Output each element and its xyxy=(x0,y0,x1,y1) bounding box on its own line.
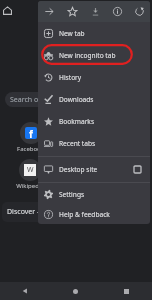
button[interactable]: Bookmark this page xyxy=(61,1,84,22)
button[interactable]: Settings xyxy=(38,183,150,205)
staticText: Discover - xyxy=(7,207,42,217)
button[interactable]: Desktop site xyxy=(38,158,150,180)
button[interactable]: Search or type web addr xyxy=(5,92,65,107)
staticText: Wikipedia xyxy=(16,182,44,189)
button[interactable]: Download page xyxy=(84,1,106,22)
staticText: f xyxy=(29,127,33,139)
staticText: Search or type web addr xyxy=(10,95,65,105)
staticText: Downloads xyxy=(59,95,94,104)
button[interactable]: Reload xyxy=(128,1,150,22)
button[interactable]: History xyxy=(38,66,150,88)
staticText: Desktop site xyxy=(59,165,98,174)
button[interactable]: Recent tabs xyxy=(38,132,150,154)
staticText: New tab xyxy=(59,29,85,38)
staticText: Bookmarks xyxy=(59,117,95,126)
button[interactable]: Home xyxy=(1,4,14,17)
button[interactable]: Discover - xyxy=(2,202,60,222)
staticText: Facebook xyxy=(17,145,44,152)
button[interactable]: New tab xyxy=(38,22,150,44)
button[interactable]: Recent apps xyxy=(101,282,152,300)
button[interactable]: Forward xyxy=(38,1,61,22)
button[interactable]: New incognito tab xyxy=(38,44,150,66)
button[interactable]: W xyxy=(13,159,47,189)
staticText: Help & feedback xyxy=(59,210,110,219)
button[interactable]: Downloads xyxy=(38,88,150,110)
staticText: Settings xyxy=(59,190,85,199)
button[interactable]: Page info xyxy=(106,1,128,22)
button[interactable]: Bookmarks xyxy=(38,110,150,132)
button[interactable]: Home xyxy=(50,282,101,300)
staticText: New incognito tab xyxy=(59,51,116,60)
staticText: History xyxy=(59,73,82,82)
staticText: W xyxy=(27,165,34,175)
button[interactable]: Back xyxy=(0,282,50,300)
button[interactable]: Help & feedback xyxy=(38,205,150,224)
staticText: Recent tabs xyxy=(59,139,96,148)
button[interactable]: f xyxy=(13,122,47,152)
